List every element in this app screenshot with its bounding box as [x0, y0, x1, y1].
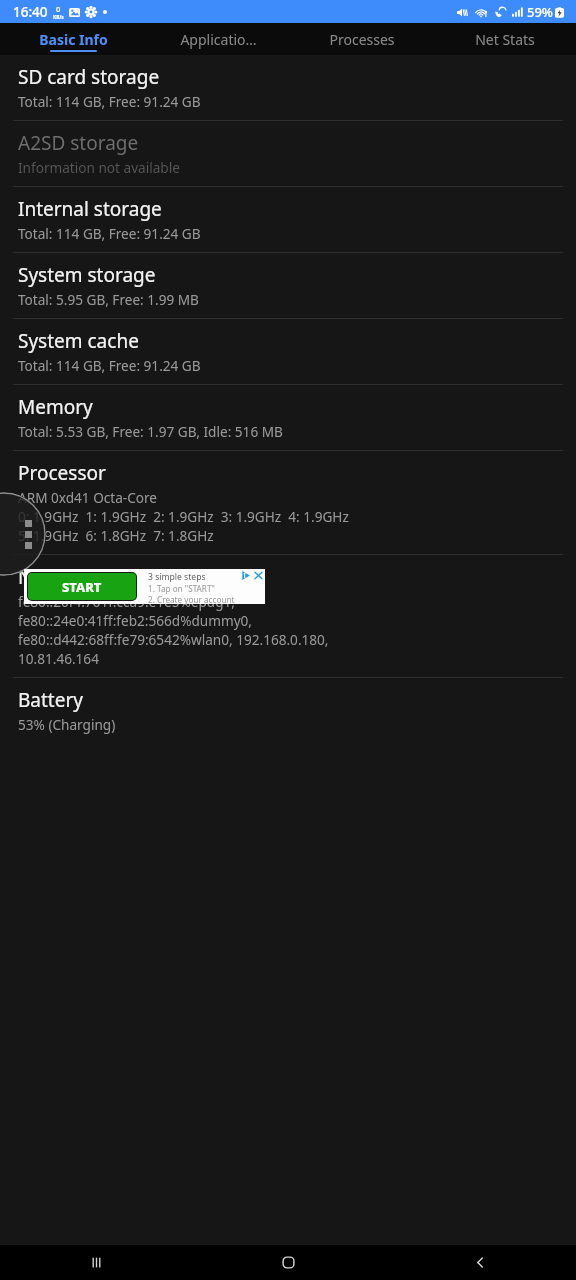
staticText: 3 simple steps	[148, 571, 206, 583]
staticText: Total: 114 GB, Free: 91.24 GB	[18, 356, 201, 375]
staticText: START	[62, 578, 102, 596]
staticText: fe80::24e0:41ff:feb2:566d%dummy0,	[18, 611, 253, 630]
staticText: System storage	[18, 262, 156, 288]
staticText: SD card storage	[18, 64, 160, 90]
staticText: 3. Access your content	[148, 605, 234, 606]
button[interactable]: A2SD storage	[0, 121, 576, 186]
staticText: ARM 0xd41 Octa-Core	[18, 488, 158, 507]
button[interactable]: Net Stats	[433, 23, 576, 55]
staticText: Total: 114 GB, Free: 91.24 GB	[18, 92, 201, 111]
staticText: fe80::d442:68ff:fe79:6542%wlan0, 192.168…	[18, 630, 329, 649]
staticText: 1. Tap on "START"	[148, 583, 215, 594]
staticText: 0: 1.9GHz 1: 1.9GHz 2: 1.9GHz 3: 1.9GHz …	[18, 507, 349, 526]
staticText: Battery	[18, 687, 83, 713]
button[interactable]: Home	[192, 1245, 384, 1280]
staticText: fe80::20f4:761f:cca9:e1e5%epdg1,	[18, 592, 235, 611]
button[interactable]: System cache	[0, 319, 576, 384]
button[interactable]: Open floating menu	[0, 492, 46, 576]
staticText: Net Stats	[475, 30, 535, 49]
staticText: Total: 5.95 GB, Free: 1.99 MB	[18, 290, 199, 309]
staticText: 5: 1.9GHz 6: 1.8GHz 7: 1.8GHz	[18, 526, 214, 545]
button[interactable]: Processes	[290, 23, 433, 55]
button[interactable]: START	[24, 569, 265, 604]
button[interactable]: Recent apps	[0, 1245, 192, 1280]
button[interactable]: Internal storage	[0, 187, 576, 252]
staticText: Processor	[18, 460, 106, 486]
staticText: Applicatio…	[180, 30, 257, 49]
staticText: Processes	[329, 30, 395, 49]
staticText: Network	[18, 564, 95, 590]
button[interactable]: Applicatio…	[147, 23, 290, 55]
button[interactable]: SD card storage	[0, 55, 576, 120]
button[interactable]: Close ad	[253, 570, 264, 581]
button[interactable]: START	[28, 573, 136, 600]
staticText: 53% (Charging)	[18, 715, 116, 734]
staticText: Memory	[18, 394, 93, 420]
staticText: 10.81.46.164	[18, 649, 99, 668]
staticText: 0	[56, 4, 61, 14]
staticText: KB/s	[53, 14, 64, 21]
staticText: Basic Info	[39, 30, 108, 49]
staticText: Information not available	[18, 158, 180, 177]
button[interactable]: Basic Info	[0, 23, 147, 55]
button[interactable]: Back	[384, 1245, 576, 1280]
staticText: System cache	[18, 328, 139, 354]
staticText: 16:40	[13, 3, 48, 21]
button[interactable]: Ad choices	[241, 570, 252, 581]
staticText: Internal storage	[18, 196, 162, 222]
button[interactable]: Processor	[0, 451, 576, 554]
staticText: 59%	[527, 3, 553, 21]
staticText: Total: 114 GB, Free: 91.24 GB	[18, 224, 201, 243]
button[interactable]: System storage	[0, 253, 576, 318]
staticText: Total: 5.53 GB, Free: 1.97 GB, Idle: 516…	[18, 422, 283, 441]
staticText: 2. Create your account	[148, 594, 235, 605]
staticText: A2SD storage	[18, 130, 139, 156]
button[interactable]: Network	[0, 555, 576, 677]
button[interactable]: Memory	[0, 385, 576, 450]
button[interactable]: Battery	[0, 678, 576, 743]
